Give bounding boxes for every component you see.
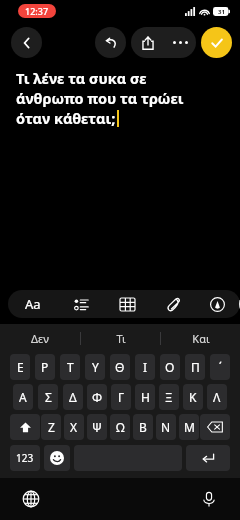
staticText: 31 xyxy=(218,8,225,16)
button[interactable]: Undo xyxy=(95,27,126,58)
button[interactable]: Σ xyxy=(38,384,58,410)
button[interactable]: Share xyxy=(131,27,164,58)
button[interactable]: Enter xyxy=(186,445,230,471)
button[interactable]: Και xyxy=(161,324,240,352)
button[interactable]: Back xyxy=(11,27,42,58)
button[interactable]: Ν xyxy=(156,414,176,440)
staticText: Τ xyxy=(67,359,74,375)
staticText: E xyxy=(238,296,240,312)
staticText: Ο xyxy=(165,359,175,375)
button[interactable]: Γ xyxy=(111,384,131,410)
button[interactable]: ΄ xyxy=(210,354,230,380)
button[interactable]: Ε xyxy=(10,354,30,380)
button[interactable]: Attach xyxy=(150,290,196,318)
staticText: Κ xyxy=(189,389,197,405)
staticText: Δ xyxy=(69,389,77,405)
button[interactable]: Ω xyxy=(110,414,130,440)
staticText: ΄ xyxy=(219,359,222,375)
button[interactable]: Change language xyxy=(18,486,44,512)
button[interactable]: Backspace xyxy=(200,414,230,440)
button[interactable]: Voice input xyxy=(196,486,222,512)
staticText: Aa xyxy=(25,295,41,313)
button[interactable]: Aa xyxy=(8,290,58,318)
staticText: Χ xyxy=(70,419,78,435)
button[interactable]: Table xyxy=(104,290,150,318)
button[interactable]: Τι xyxy=(81,324,160,352)
staticText: Σ xyxy=(45,389,52,405)
staticText: Θ xyxy=(115,359,125,375)
staticText: Ι xyxy=(143,359,148,375)
staticText: Λ xyxy=(213,389,221,405)
staticText: Α xyxy=(19,389,27,405)
staticText: Ψ xyxy=(92,419,102,435)
button[interactable]: Υ xyxy=(85,354,105,380)
staticText: Ζ xyxy=(48,419,55,435)
button[interactable]: Κ xyxy=(183,384,203,410)
staticText: 12:37 xyxy=(25,5,49,17)
button[interactable]: Checklist xyxy=(58,290,104,318)
button[interactable]: Δ xyxy=(63,384,83,410)
staticText: Ξ xyxy=(165,389,173,405)
button[interactable]: Ρ xyxy=(35,354,55,380)
staticText: 123 xyxy=(16,451,34,465)
button[interactable]: Τ xyxy=(60,354,80,380)
button[interactable]: Φ xyxy=(87,384,107,410)
staticText: όταν κάθεται; xyxy=(16,108,116,128)
button[interactable]: Emoji xyxy=(44,445,70,471)
button[interactable]: Β xyxy=(133,414,153,440)
button[interactable]: Ψ xyxy=(87,414,107,440)
button[interactable]: Ζ xyxy=(41,414,61,440)
button[interactable]: More xyxy=(238,290,240,318)
staticText: Φ xyxy=(92,389,103,405)
button[interactable]: Α xyxy=(13,384,33,410)
staticText: άνθρωπο που τα τρώει xyxy=(16,88,184,108)
button[interactable]: Shift xyxy=(10,414,40,440)
staticText: Ρ xyxy=(41,359,49,375)
button[interactable]: Η xyxy=(135,384,155,410)
staticText: Και xyxy=(192,331,210,346)
button[interactable]: Ξ xyxy=(159,384,179,410)
staticText: Η xyxy=(141,389,150,405)
staticText: Δεν xyxy=(31,331,49,346)
button[interactable]: Ι xyxy=(135,354,155,380)
button[interactable]: Μ xyxy=(179,414,199,440)
button[interactable]: More options xyxy=(164,27,196,58)
button[interactable]: Λ xyxy=(207,384,227,410)
button[interactable]: Done xyxy=(201,27,232,58)
staticText: Μ xyxy=(184,419,195,435)
button[interactable]: Ο xyxy=(160,354,180,380)
staticText: Υ xyxy=(92,359,99,375)
staticText: Ν xyxy=(161,419,171,435)
staticText: Π xyxy=(191,359,200,375)
button[interactable]: Π xyxy=(185,354,205,380)
staticText: Τι λένε τα συκα σε xyxy=(16,68,147,88)
staticText: Ω xyxy=(116,419,125,435)
staticText: Β xyxy=(139,419,147,435)
button[interactable]: Markup xyxy=(196,290,238,318)
button[interactable]: Δεν xyxy=(0,324,80,352)
staticText: Ε xyxy=(17,359,24,375)
staticText: Τι xyxy=(116,331,126,346)
staticText: Γ xyxy=(118,389,124,405)
button[interactable]: 123 xyxy=(10,445,40,471)
button[interactable]: Θ xyxy=(110,354,130,380)
button[interactable]: Χ xyxy=(64,414,84,440)
